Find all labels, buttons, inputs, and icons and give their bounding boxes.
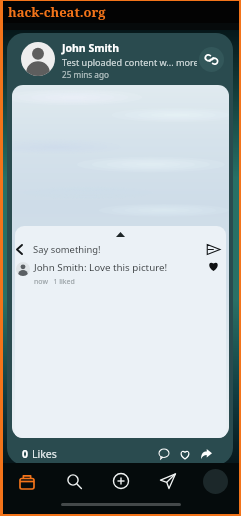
staticText: hack-cheat.org	[8, 3, 106, 21]
button[interactable]: Add	[103, 465, 139, 497]
staticText: John Smith	[62, 41, 119, 55]
button[interactable]: Profile	[197, 465, 233, 497]
button[interactable]: Back	[15, 238, 26, 260]
button[interactable]: Copy link	[199, 47, 224, 72]
staticText: 0	[22, 447, 29, 461]
staticText: Test uploaded content w... more...	[62, 56, 197, 68]
button[interactable]: Send	[206, 238, 220, 260]
button[interactable]: Like comment	[207, 260, 219, 272]
staticText: Say something!	[33, 243, 101, 256]
button[interactable]: Messages	[150, 465, 186, 497]
button[interactable]: Share	[199, 447, 213, 461]
button[interactable]: Home	[9, 465, 45, 497]
button[interactable]: Search	[56, 465, 92, 497]
button[interactable]: Comment	[157, 447, 171, 461]
staticText: Likes	[32, 447, 57, 461]
staticText: now 1 liked	[34, 277, 75, 287]
button[interactable]: 0	[22, 447, 57, 461]
button[interactable]: Like	[178, 447, 192, 461]
staticText: 25 mins ago	[62, 69, 109, 80]
staticText: John Smith: Love this picture!	[34, 261, 168, 274]
